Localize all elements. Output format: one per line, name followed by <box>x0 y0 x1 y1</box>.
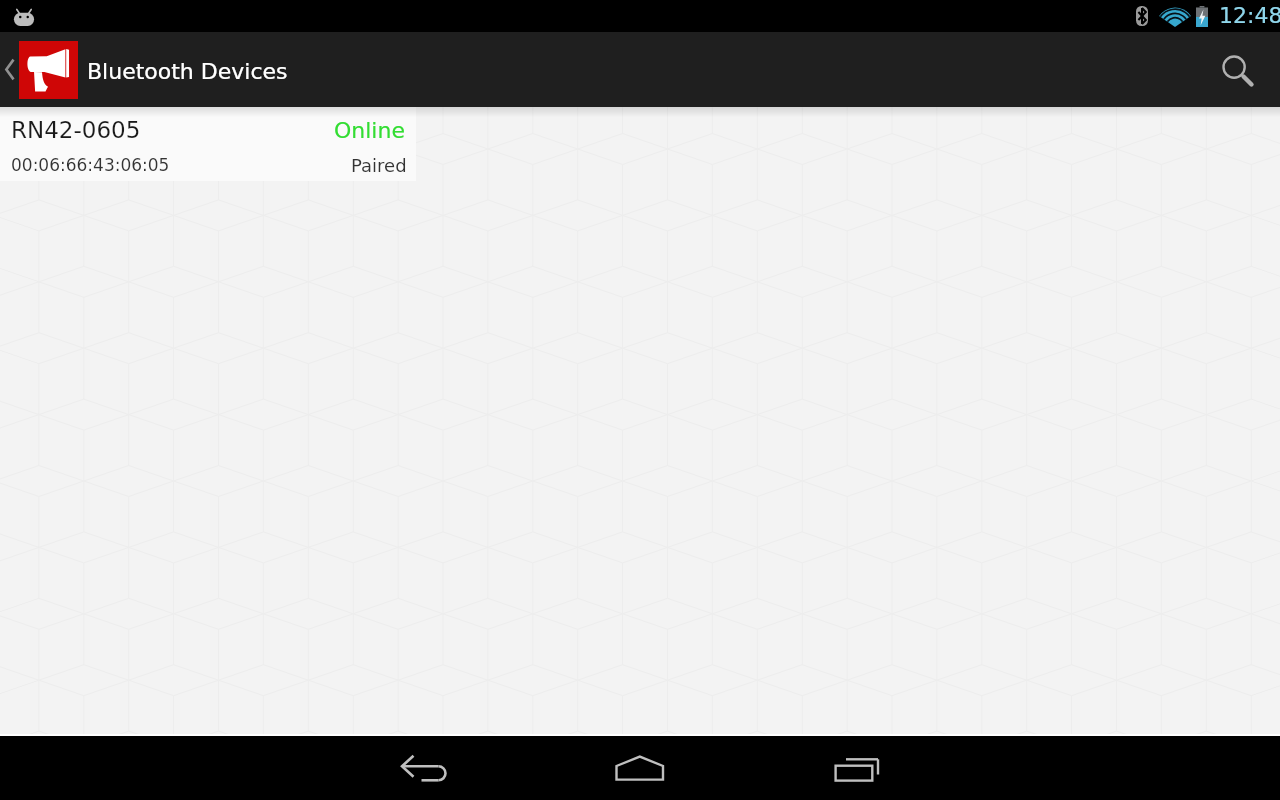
staticText: Paired <box>351 155 407 176</box>
button[interactable]: Home <box>596 736 684 800</box>
button[interactable]: Search <box>1205 32 1280 107</box>
staticText: Bluetooth Devices <box>87 59 288 85</box>
staticText: 00:06:66:43:06:05 <box>11 155 170 175</box>
button[interactable]: Back <box>380 736 468 800</box>
button[interactable]: Navigate up: Bluetooth Devices <box>0 32 302 107</box>
button[interactable]: Recent apps <box>813 736 901 800</box>
staticText: Online <box>334 118 405 144</box>
button[interactable]: RN42-0605 <box>0 107 416 181</box>
staticText: 12:48 <box>1219 3 1280 29</box>
staticText: RN42-0605 <box>11 117 141 144</box>
